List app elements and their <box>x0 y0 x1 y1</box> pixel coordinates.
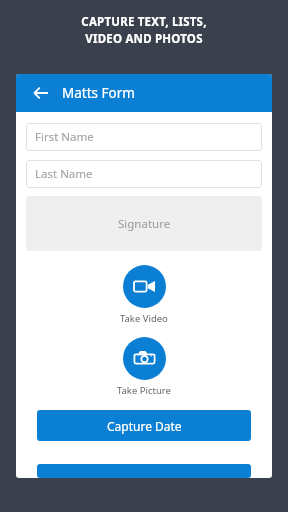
staticText: VIDEO AND PHOTOS <box>85 31 203 47</box>
button[interactable]: Capture Date <box>37 410 251 441</box>
button[interactable]: Capture Time <box>37 464 251 478</box>
staticText: Capture Date <box>107 418 182 434</box>
staticText: Take Picture <box>117 384 171 397</box>
staticText: Matts Form <box>62 84 135 102</box>
staticText: Take Video <box>120 312 168 325</box>
button[interactable]: Last Name <box>26 160 262 188</box>
button[interactable]: Take Picture <box>123 337 166 380</box>
staticText: Signature <box>118 216 171 232</box>
button[interactable]: Signature <box>26 196 262 251</box>
staticText: First Name <box>35 129 94 145</box>
button[interactable]: First Name <box>26 123 262 151</box>
button[interactable]: Take Video <box>123 265 166 308</box>
staticText: CAPTURE TEXT, LISTS, <box>81 14 207 30</box>
button[interactable]: Back <box>28 80 54 106</box>
staticText: Last Name <box>35 166 93 182</box>
